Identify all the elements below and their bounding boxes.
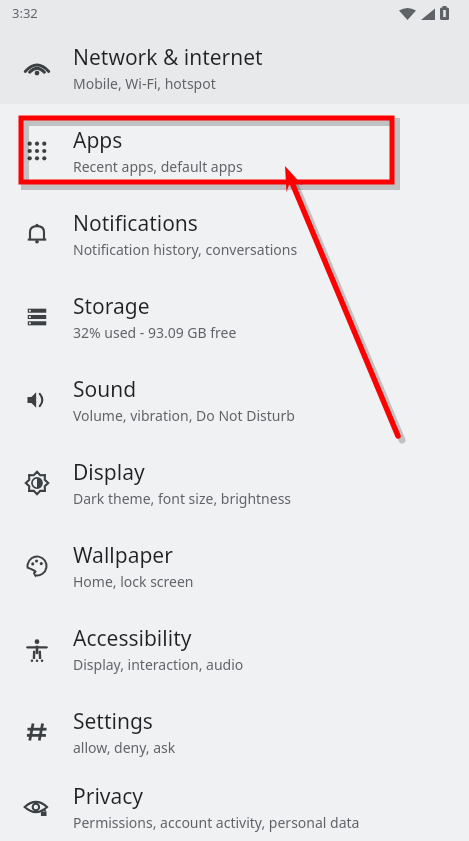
- button[interactable]: Network & internet: [0, 26, 469, 109]
- staticText: Volume, vibration, Do Not Disturb: [73, 406, 295, 425]
- staticText: 3:32: [12, 4, 38, 22]
- staticText: Recent apps, default apps: [73, 157, 243, 176]
- staticText: 32% used - 93.09 GB free: [73, 323, 237, 342]
- button[interactable]: Sound: [0, 358, 469, 441]
- button[interactable]: Apps: [0, 109, 469, 192]
- staticText: Sound: [73, 375, 137, 404]
- staticText: Home, lock screen: [73, 572, 194, 591]
- staticText: Privacy: [73, 782, 144, 811]
- staticText: Dark theme, font size, brightness: [73, 489, 292, 508]
- button[interactable]: Wallpaper: [0, 524, 469, 607]
- staticText: allow, deny, ask: [73, 738, 176, 757]
- staticText: Notifications: [73, 209, 198, 238]
- staticText: Notification history, conversations: [73, 240, 298, 259]
- staticText: Storage: [73, 292, 150, 321]
- staticText: Mobile, Wi-Fi, hotspot: [73, 74, 216, 93]
- button[interactable]: Notifications: [0, 192, 469, 275]
- staticText: Apps: [73, 126, 123, 155]
- staticText: Display, interaction, audio: [73, 655, 244, 674]
- button[interactable]: Privacy: [0, 773, 469, 841]
- staticText: Display: [73, 458, 145, 487]
- button[interactable]: Accessibility: [0, 607, 469, 690]
- button[interactable]: Display: [0, 441, 469, 524]
- staticText: Permissions, account activity, personal …: [73, 813, 360, 832]
- staticText: Accessibility: [73, 624, 192, 653]
- button[interactable]: Storage: [0, 275, 469, 358]
- button[interactable]: Settings: [0, 690, 469, 773]
- staticText: Wallpaper: [73, 541, 173, 570]
- staticText: Settings: [73, 707, 153, 736]
- staticText: Network & internet: [73, 43, 263, 72]
